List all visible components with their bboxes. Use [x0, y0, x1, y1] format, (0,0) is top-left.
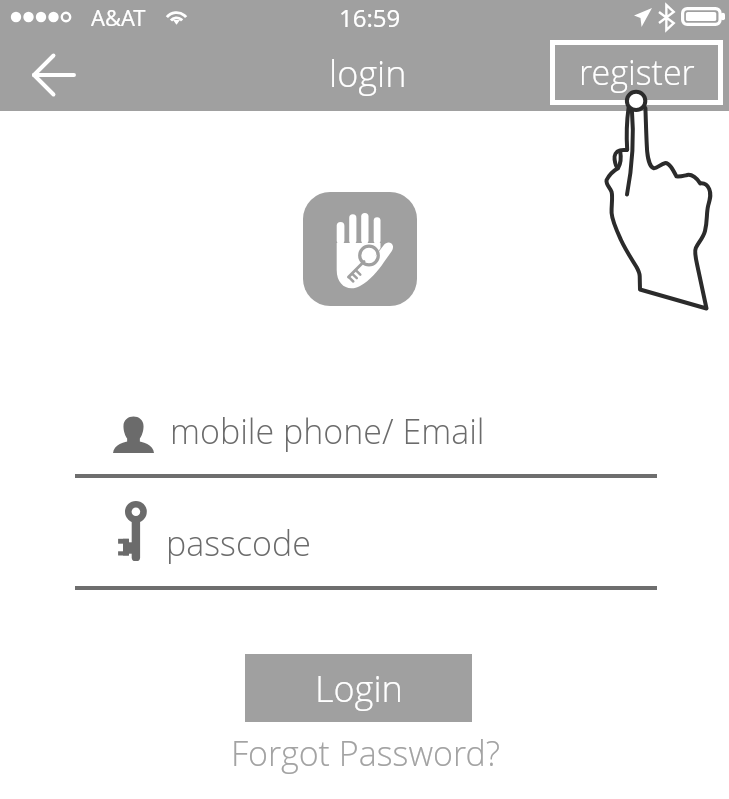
button[interactable]: mobile phone/ Email	[75, 394, 657, 474]
staticText: passcode	[166, 520, 311, 566]
button[interactable]: Forgot Password?	[206, 726, 524, 780]
staticText: Forgot Password?	[231, 730, 500, 776]
button[interactable]: register	[550, 40, 723, 105]
staticText: register	[579, 49, 695, 95]
staticText: mobile phone/ Email	[170, 408, 485, 454]
button[interactable]: Login	[245, 654, 472, 722]
button[interactable]: passcode	[75, 506, 657, 586]
staticText: Login	[315, 664, 403, 713]
button[interactable]: Back	[10, 46, 98, 104]
staticText: login	[329, 49, 407, 98]
staticText: 16:59	[339, 1, 401, 34]
staticText: A&AT	[91, 2, 146, 32]
